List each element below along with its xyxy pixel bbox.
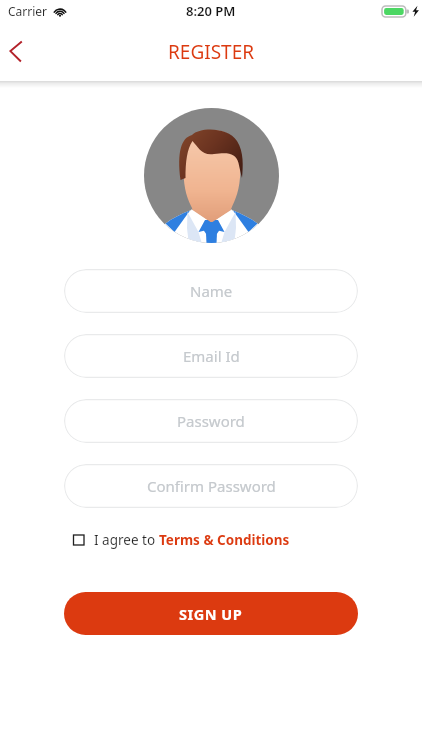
button[interactable]: Name: [64, 269, 358, 313]
button[interactable]: I agree to terms checkbox: [64, 530, 84, 550]
staticText: I agree to: [94, 531, 159, 549]
button[interactable]: Password: [64, 399, 358, 443]
staticText: Confirm Password: [147, 476, 276, 496]
button[interactable]: Confirm Password: [64, 464, 358, 508]
staticText: SIGN UP: [179, 604, 243, 624]
staticText: Email Id: [183, 346, 240, 366]
staticText: 8:20 PM: [186, 2, 236, 20]
button[interactable]: SIGN UP: [64, 592, 358, 635]
staticText: REGISTER: [168, 39, 255, 65]
staticText: Password: [177, 411, 245, 431]
button[interactable]: Back: [0, 30, 44, 74]
button[interactable]: Terms & Conditions: [159, 531, 290, 549]
staticText: Carrier: [8, 3, 48, 19]
button[interactable]: Email Id: [64, 334, 358, 378]
staticText: Name: [190, 281, 233, 301]
